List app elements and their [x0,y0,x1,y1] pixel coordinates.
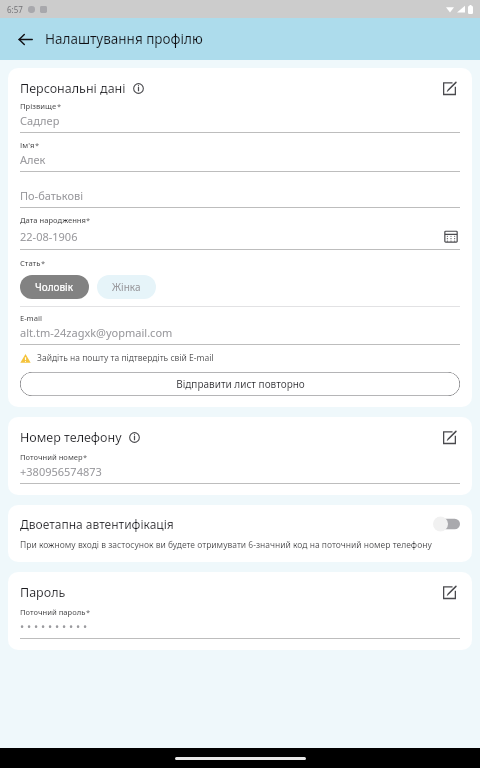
button[interactable]: Жінка [97,275,156,299]
staticText: Зайдіть на пошту та підтвердіть свій E-m… [37,352,214,364]
staticText: Стать [20,258,41,268]
button[interactable]: Edit Персональні дані [438,77,460,99]
staticText: * [86,215,91,225]
staticText: alt.tm-24zagxk@yopmail.com [20,325,460,340]
staticText: 6:57 [7,4,23,15]
staticText: * [41,258,46,268]
staticText: * [83,452,88,462]
staticText: Двоетапна автентифікація [20,516,432,532]
staticText: Алек [20,152,460,167]
staticText: Поточний пароль [20,607,86,617]
staticText: Дата народження [20,215,86,225]
staticText: 22-08-1906 [20,229,442,244]
staticText: * [86,607,91,617]
staticText: • • • • • • • • • • [20,619,460,634]
button[interactable]: Information [131,81,145,95]
staticText: * [35,140,40,150]
staticText: +380956574873 [20,464,460,479]
button[interactable]: Відправити лист повторно [20,372,460,396]
staticText: Чоловік [35,280,74,294]
staticText: Налаштування профілю [45,30,203,48]
button[interactable]: Two-step authentication toggle [432,516,460,532]
staticText: Персональні дані [20,80,126,97]
staticText: E-mail [20,313,43,323]
staticText: Пароль [20,584,66,601]
button[interactable]: Select date [442,227,460,245]
staticText: * [57,101,62,111]
button[interactable]: Information [127,430,141,444]
staticText: При кожному вході в застосунок ви будете… [20,539,432,551]
button[interactable]: Чоловік [20,275,89,299]
staticText: Поточний номер [20,452,83,462]
button[interactable]: Edit Номер телефону [438,426,460,448]
staticText: Прізвище [20,101,57,111]
staticText: Ім'я [20,140,35,150]
staticText: Садлер [20,113,460,128]
staticText: Номер телефону [20,429,122,446]
staticText: По-батькові [20,188,84,203]
button[interactable]: Back [12,26,38,52]
button[interactable]: Edit Пароль [438,581,460,603]
staticText: Жінка [112,280,141,294]
staticText: Відправити лист повторно [176,377,305,391]
